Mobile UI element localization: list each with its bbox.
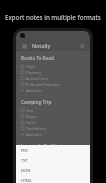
staticText: Torch xyxy=(26,120,36,125)
staticText: Tent xyxy=(26,108,34,113)
button[interactable]: Ropes xyxy=(21,113,85,119)
button[interactable]: PDF xyxy=(21,148,90,153)
staticText: Ropes xyxy=(26,114,37,119)
button[interactable]: Hope xyxy=(21,63,85,69)
staticText: Pride and Prejudice xyxy=(26,82,60,87)
button[interactable]: Demand xyxy=(21,69,85,75)
button[interactable]: Search xyxy=(78,42,86,50)
staticText: Hope xyxy=(26,64,36,69)
button[interactable]: Animal Farm xyxy=(21,75,85,81)
staticText: Animal Farm xyxy=(26,76,48,81)
staticText: Camping Trip xyxy=(21,99,52,105)
staticText: Export notes in multiple formats xyxy=(5,13,101,21)
staticText: Demand xyxy=(26,70,41,75)
button[interactable]: Toothbrush xyxy=(21,125,85,131)
staticText: TXT xyxy=(21,158,28,163)
button[interactable]: JSON xyxy=(21,168,90,173)
staticText: Add item xyxy=(26,132,42,137)
button[interactable]: Add item xyxy=(21,131,85,137)
button[interactable]: Pride and Prejudice xyxy=(21,81,85,87)
staticText: Notally xyxy=(32,42,51,49)
button[interactable]: Tent xyxy=(21,107,85,113)
staticText: PDF xyxy=(21,148,29,153)
staticText: Simplicity is the ultimate sophisticatio… xyxy=(21,151,85,156)
button[interactable]: HTML xyxy=(21,178,90,183)
staticText: HTML xyxy=(21,178,32,183)
button[interactable]: Open navigation menu xyxy=(20,42,28,50)
staticText: JSON xyxy=(21,168,31,173)
staticText: Leonardo Da Vinci xyxy=(21,143,63,149)
staticText: Books To Read xyxy=(21,55,54,61)
button[interactable]: Add item xyxy=(21,87,85,93)
button[interactable]: Torch xyxy=(21,119,85,125)
staticText: Add item xyxy=(26,88,42,93)
button[interactable]: TXT xyxy=(21,158,90,163)
staticText: Toothbrush xyxy=(26,126,46,131)
